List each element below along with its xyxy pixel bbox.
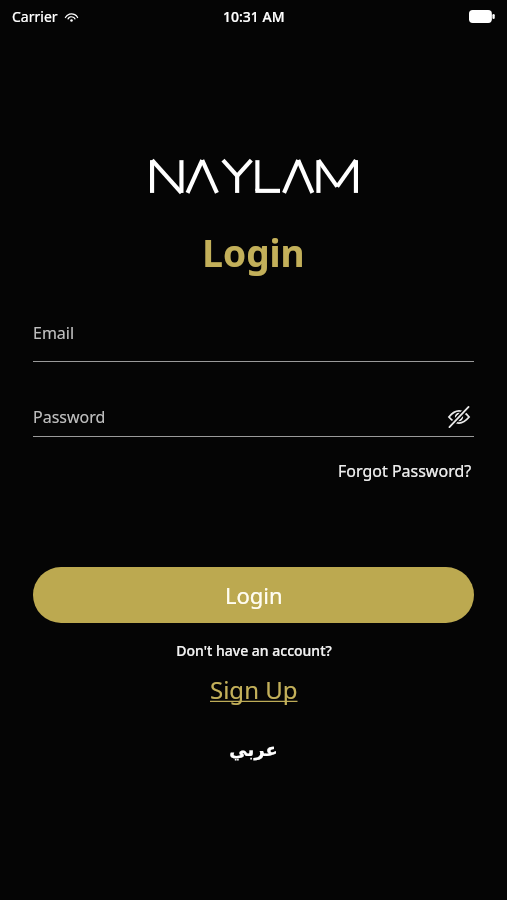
staticText: Don't have an account? xyxy=(176,641,332,660)
staticText: 10:31 AM xyxy=(223,7,285,26)
staticText: Forgot Password? xyxy=(338,460,472,482)
staticText: Password xyxy=(33,406,444,428)
button[interactable]: Sign Up xyxy=(208,673,300,706)
button[interactable]: عربي xyxy=(221,737,286,762)
button[interactable]: Show password xyxy=(444,402,474,432)
button[interactable]: Password xyxy=(33,402,474,432)
staticText: Carrier xyxy=(12,7,58,26)
other: NAYLAM xyxy=(150,158,358,194)
button[interactable]: Email xyxy=(33,322,474,362)
staticText: Email xyxy=(33,322,75,344)
button[interactable]: Login xyxy=(33,567,474,623)
staticText: Sign Up xyxy=(210,673,298,706)
button[interactable]: Forgot Password? xyxy=(334,456,476,486)
staticText: عربي xyxy=(229,739,278,760)
staticText: Login xyxy=(202,227,305,277)
staticText: Login xyxy=(225,580,283,610)
